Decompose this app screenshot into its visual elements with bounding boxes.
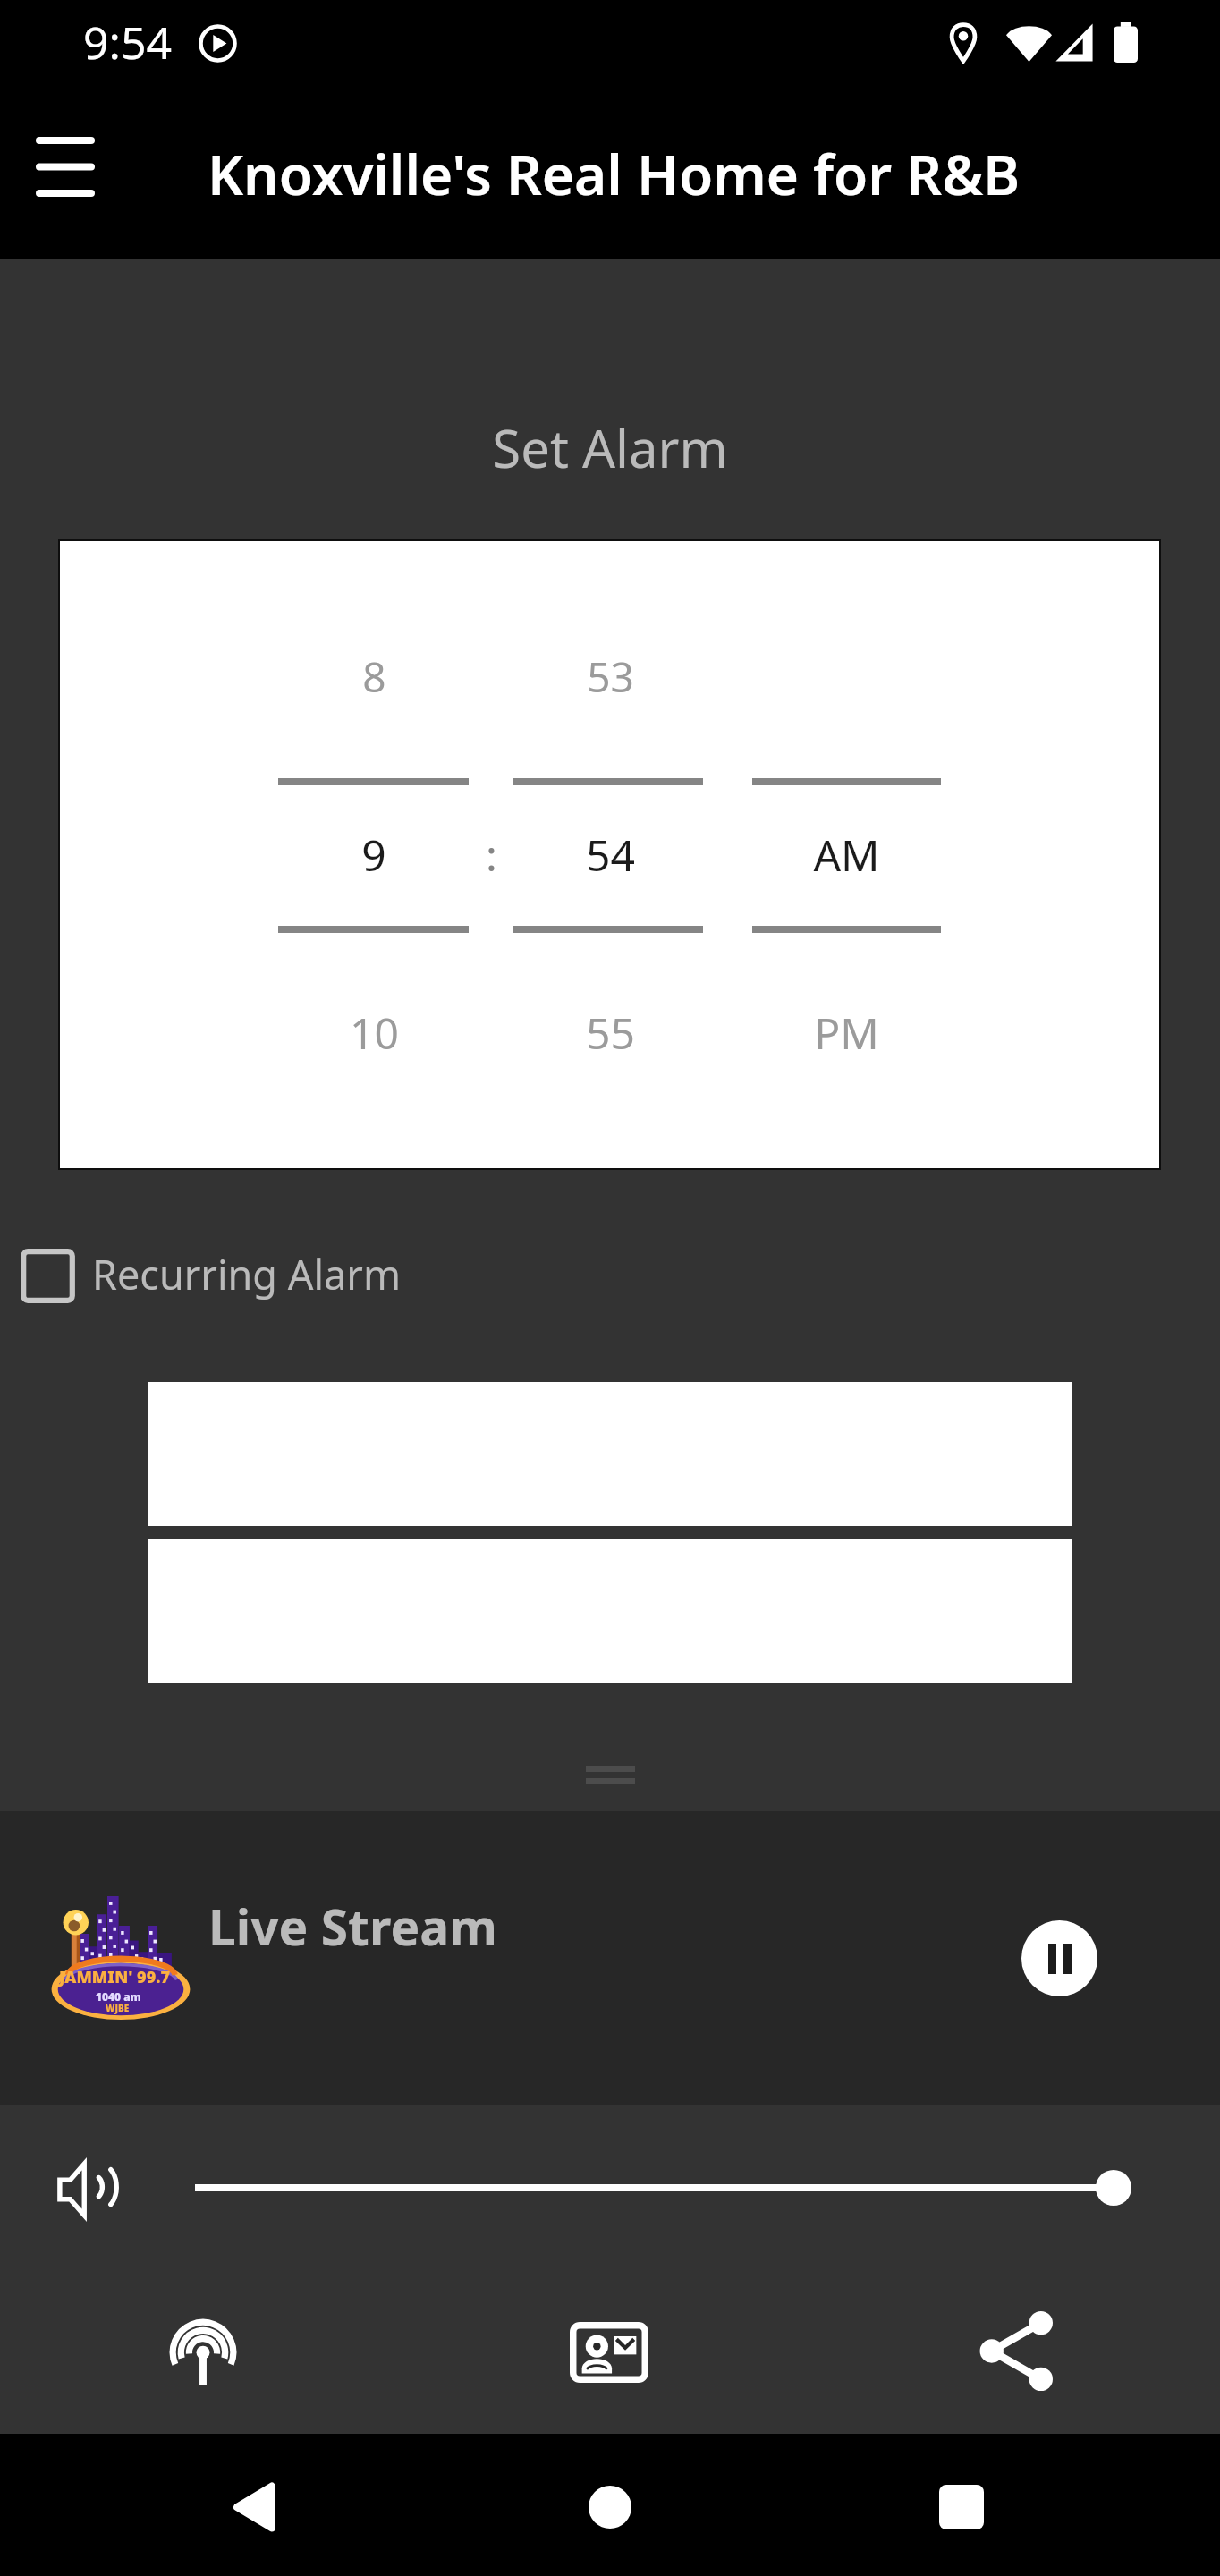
staticText: 53 [587, 648, 634, 705]
button[interactable]: 8 [258, 631, 490, 711]
staticText: 1040 am [96, 1989, 141, 2004]
button[interactable]: PM [730, 986, 962, 1066]
button[interactable]: 53 [494, 631, 726, 711]
button[interactable]: Recent apps [899, 2445, 1024, 2570]
button[interactable]: : [375, 808, 607, 888]
staticText: 9:54 [83, 12, 173, 72]
button[interactable]: Live broadcast [140, 2289, 266, 2414]
button[interactable]: Cancel alarm [148, 1539, 1072, 1683]
staticText: : [486, 826, 497, 884]
button[interactable]: Contact us [546, 2290, 672, 2415]
staticText: JAMMIN' 99.7 [59, 1966, 170, 1988]
staticText: 55 [586, 1004, 635, 1062]
staticText: Recurring Alarm [92, 1247, 402, 1301]
other: Volume [57, 2157, 122, 2222]
staticText: Knoxville's Real Home for R&B [208, 136, 1021, 211]
button[interactable]: Recurring Alarm [0, 1227, 1220, 1326]
button[interactable]: 54 [494, 808, 726, 888]
button[interactable]: Back [191, 2445, 317, 2570]
button[interactable]: Pause [1002, 1901, 1116, 2015]
button[interactable]: 10 [258, 986, 490, 1066]
staticText: 8 [362, 648, 386, 705]
staticText: 9 [361, 826, 386, 884]
staticText: PM [814, 1004, 879, 1062]
staticText: 10 [350, 1004, 399, 1062]
button[interactable]: AM [730, 808, 962, 888]
button[interactable]: Share [953, 2288, 1079, 2413]
staticText: AM [813, 826, 880, 884]
button[interactable]: 55 [494, 986, 726, 1066]
button[interactable]: Volume slider [186, 2152, 1141, 2224]
button[interactable]: 9 [258, 808, 490, 888]
staticText: Live Stream [208, 1893, 497, 1960]
staticText: 54 [586, 826, 635, 884]
button[interactable]: Open navigation menu [0, 107, 131, 225]
button[interactable]: Home [547, 2445, 673, 2570]
staticText: WJBE [106, 2002, 130, 2014]
staticText: Set Alarm [492, 412, 728, 483]
